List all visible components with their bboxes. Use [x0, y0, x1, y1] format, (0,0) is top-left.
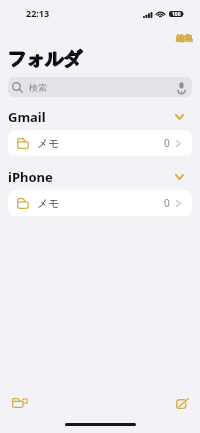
button[interactable]: メモ [8, 130, 192, 156]
button[interactable]: Gmail [8, 108, 192, 126]
other: Voice search [177, 82, 186, 93]
button[interactable]: iPhone [8, 168, 192, 186]
staticText: 0 [164, 136, 170, 150]
staticText: メモ [37, 196, 60, 210]
staticText: 検索 [29, 82, 47, 93]
staticText: 22:13 [26, 7, 50, 19]
button[interactable]: New Note [169, 391, 195, 415]
button[interactable]: 編集 [170, 29, 200, 47]
staticText: Gmail [8, 108, 46, 126]
staticText: 0 [164, 196, 170, 210]
button[interactable]: メモ [8, 190, 192, 216]
staticText: フォルダ [8, 48, 82, 71]
button[interactable]: 検索 [8, 77, 192, 97]
staticText: メモ [37, 136, 60, 150]
staticText: 100 [172, 11, 181, 17]
staticText: iPhone [8, 168, 53, 186]
button[interactable]: New Folder [5, 391, 35, 415]
staticText: 編集 [176, 33, 193, 43]
staticText: フォルダ [8, 48, 82, 71]
staticText: 編集 [176, 33, 193, 43]
